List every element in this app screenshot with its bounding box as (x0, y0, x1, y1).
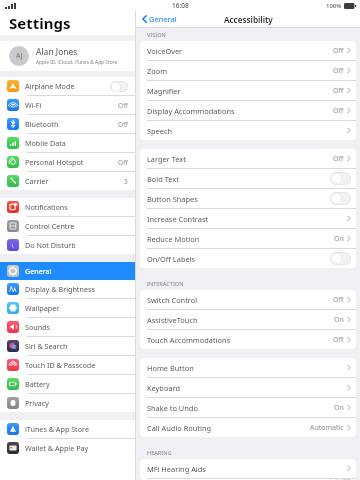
staticText: Off (333, 86, 344, 96)
button[interactable]: Sounds (0, 318, 135, 336)
other: Open Call Audio Routing (347, 424, 351, 431)
staticText: MFi Hearing Aids (147, 464, 347, 474)
staticText: Off (333, 335, 344, 345)
button[interactable]: Wallpaper (0, 299, 135, 317)
other: Open Touch Accommodations (347, 336, 351, 343)
button[interactable]: MFi Hearing Aids (140, 459, 356, 478)
button[interactable]: Siri & Search (0, 337, 135, 355)
button[interactable]: Zoom (140, 61, 356, 80)
staticText: Home Button (147, 363, 347, 373)
staticText: Bluetooth (25, 119, 118, 129)
button[interactable]: Switch Control (140, 290, 356, 309)
button[interactable]: VoiceOver (140, 41, 356, 60)
staticText: Bold Text (147, 174, 330, 184)
staticText: Off (118, 158, 128, 167)
button[interactable]: Touch Accommodations (140, 330, 356, 349)
staticText: General (149, 14, 177, 24)
button[interactable]: Wallet & Apple Pay (0, 439, 135, 457)
staticText: Button Shapes (147, 194, 330, 204)
button[interactable]: On/Off Labels (140, 249, 356, 268)
button[interactable]: Shake to Undo (140, 398, 356, 417)
button[interactable]: Toggle off (110, 81, 128, 92)
button[interactable]: Reduce Motion (140, 229, 356, 248)
staticText: iTunes & App Store (25, 424, 128, 434)
button[interactable]: Notifications (0, 198, 135, 216)
button[interactable]: Control Centre (0, 217, 135, 235)
button[interactable]: Personal Hotspot (0, 153, 135, 171)
button[interactable]: Toggle off (330, 192, 351, 205)
staticText: 3 (124, 177, 128, 186)
button[interactable]: Battery (0, 375, 135, 393)
staticText: Accessibility (224, 14, 273, 25)
staticText: Apple ID, iCloud, iTunes & App Store (36, 59, 118, 66)
button[interactable]: Display & Brightness (0, 280, 135, 298)
button[interactable]: Privacy (0, 394, 135, 412)
button[interactable]: Larger Text (140, 149, 356, 168)
staticText: On (334, 315, 344, 325)
staticText: Increase Contrast (147, 214, 347, 224)
staticText: Off (333, 295, 344, 305)
staticText: VISION (147, 31, 166, 39)
button[interactable]: Carrier (0, 172, 135, 190)
staticText: Wi-Fi (25, 100, 118, 110)
staticText: HEARING (147, 449, 172, 457)
button[interactable]: Magnifier (140, 81, 356, 100)
staticText: Off (333, 106, 344, 116)
staticText: Mobile Data (25, 138, 128, 148)
other: Open Magnifier (347, 87, 351, 94)
staticText: 16:08 (172, 1, 189, 10)
button[interactable]: General (0, 262, 135, 280)
other: Open VoiceOver (347, 47, 351, 54)
staticText: Display & Brightness (25, 284, 128, 294)
button[interactable]: iTunes & App Store (0, 420, 135, 438)
staticText: Privacy (25, 398, 128, 408)
staticText: Larger Text (147, 154, 333, 164)
staticText: Magnifier (147, 86, 333, 96)
staticText: Control Centre (25, 221, 128, 231)
button[interactable]: Call Audio Routing (140, 418, 356, 437)
button[interactable]: Speech (140, 121, 356, 140)
other: Open Increase Contrast (347, 215, 351, 222)
other: Open Larger Text (347, 155, 351, 162)
button[interactable]: AJ (0, 41, 135, 71)
staticText: Wallet & Apple Pay (25, 443, 128, 453)
staticText: Battery (25, 379, 128, 389)
staticText: Touch Accommodations (147, 335, 333, 345)
staticText: Off (333, 154, 344, 164)
staticText: Notifications (25, 202, 128, 212)
button[interactable]: Keyboard (140, 378, 356, 397)
other: Open MFi Hearing Aids (347, 465, 351, 472)
staticText: Carrier (25, 176, 124, 186)
button[interactable]: Do Not Disturb (0, 236, 135, 254)
other: Open Display Accommodations (347, 107, 351, 114)
button[interactable]: Bold Text (140, 169, 356, 188)
button[interactable]: Increase Contrast (140, 209, 356, 228)
staticText: Switch Control (147, 295, 333, 305)
button[interactable]: Mono Audio (140, 479, 356, 480)
staticText: Siri & Search (25, 341, 128, 351)
staticText: Call Audio Routing (147, 423, 310, 433)
staticText: Speech (147, 126, 347, 136)
button[interactable]: General (140, 13, 179, 25)
other: Open Shake to Undo (347, 404, 351, 411)
staticText: Touch ID & Passcode (25, 360, 128, 370)
button[interactable]: Toggle off (330, 479, 351, 480)
button[interactable]: Toggle off (330, 172, 351, 185)
button[interactable]: Button Shapes (140, 189, 356, 208)
staticText: On (334, 234, 344, 244)
staticText: Automatic (310, 423, 344, 433)
button[interactable]: Bluetooth (0, 115, 135, 133)
button[interactable]: Wi-Fi (0, 96, 135, 114)
button[interactable]: AssistiveTouch (140, 310, 356, 329)
button[interactable]: Mobile Data (0, 134, 135, 152)
button[interactable]: Display Accommodations (140, 101, 356, 120)
button[interactable]: Home Button (140, 358, 356, 377)
staticText: Do Not Disturb (25, 240, 128, 250)
button[interactable]: Airplane Mode (0, 77, 135, 95)
button[interactable]: Toggle off (330, 252, 351, 265)
button[interactable]: Touch ID & Passcode (0, 356, 135, 374)
staticText: Off (333, 46, 344, 56)
staticText: Settings (9, 13, 71, 33)
staticText: On/Off Labels (147, 254, 330, 264)
